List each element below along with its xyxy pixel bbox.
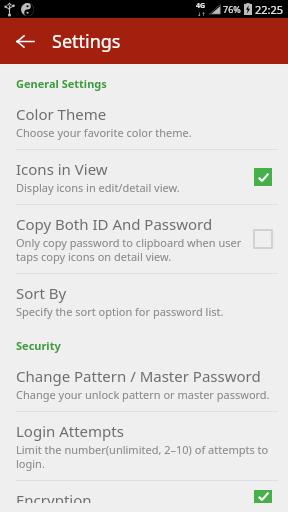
- button[interactable]: Color Theme: [0, 95, 288, 149]
- button[interactable]: Checked: [250, 164, 276, 190]
- staticText: Sort By: [16, 283, 67, 303]
- staticText: Change Pattern / Master Password: [16, 366, 261, 386]
- button[interactable]: Back: [8, 24, 42, 58]
- button[interactable]: Unchecked: [250, 226, 276, 252]
- staticText: Security: [16, 338, 61, 353]
- button[interactable]: Sort By: [0, 274, 288, 328]
- staticText: Change your unlock pattern or master pas…: [16, 387, 270, 402]
- staticText: ↓↑: [197, 11, 206, 17]
- staticText: Color Theme: [16, 104, 107, 124]
- staticText: 22:25: [255, 2, 284, 17]
- staticText: 4G: [196, 1, 206, 11]
- staticText: Login Attempts: [16, 421, 124, 441]
- staticText: Choose your favorite color theme.: [16, 125, 192, 140]
- button[interactable]: Encryption: [0, 481, 288, 512]
- staticText: Limit the number(unlimited, 2–10) of att…: [16, 442, 276, 471]
- staticText: Encryption: [16, 490, 92, 503]
- staticText: Settings: [52, 29, 121, 54]
- staticText: Display icons in edit/detail view.: [16, 180, 180, 195]
- staticText: 76%: [223, 3, 241, 15]
- staticText: Copy Both ID And Password: [16, 214, 213, 234]
- button[interactable]: Icons in View: [0, 150, 288, 204]
- button[interactable]: Copy Both ID And Password: [0, 205, 288, 273]
- staticText: Specify the sort option for password lis…: [16, 304, 224, 319]
- staticText: General Settings: [16, 76, 107, 91]
- staticText: Only copy password to clipboard when use…: [16, 235, 242, 264]
- button[interactable]: Login Attempts: [0, 412, 288, 480]
- staticText: Icons in View: [16, 159, 108, 179]
- button[interactable]: Checked: [250, 490, 276, 503]
- button[interactable]: Change Pattern / Master Password: [0, 357, 288, 411]
